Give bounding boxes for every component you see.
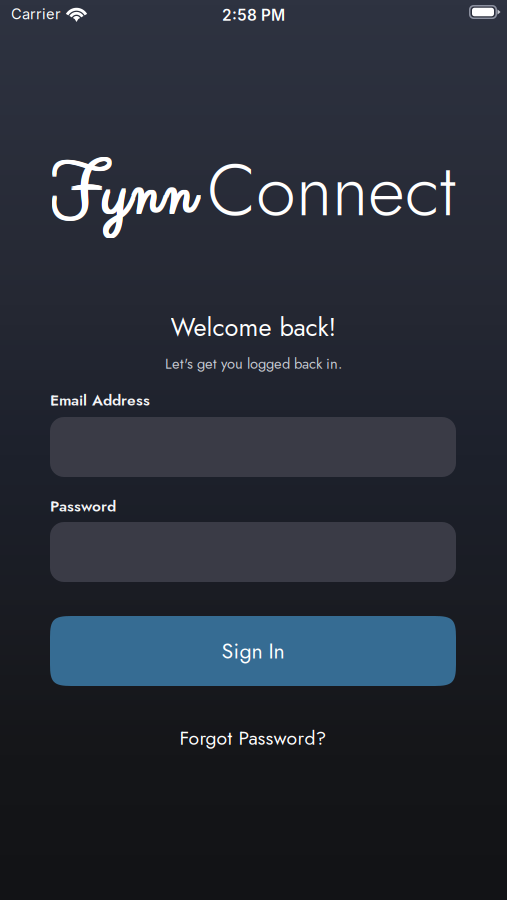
button[interactable]: Sign In — [50, 616, 456, 686]
staticText: 2:58 PM — [222, 6, 285, 25]
staticText: Fynn — [51, 145, 195, 247]
staticText: Email Address — [50, 389, 150, 411]
staticText: Fynn — [51, 142, 195, 244]
staticText: Fynn — [52, 144, 196, 246]
staticText: Carrier — [11, 5, 61, 23]
staticText: Fynn — [50, 144, 194, 246]
staticText: Connect — [207, 138, 456, 242]
staticText: Welcome back! — [170, 309, 336, 346]
button[interactable]: Forgot Password? — [50, 721, 456, 755]
staticText: Fynn — [52, 145, 196, 247]
staticText: Fynn — [50, 145, 194, 247]
staticText: Fynn — [52, 142, 196, 244]
staticText: Fynn — [51, 144, 195, 246]
staticText: Password — [50, 495, 116, 517]
staticText: Fynn — [50, 142, 194, 244]
staticText: Let's get you logged back in. — [165, 353, 342, 374]
staticText: Forgot Password? — [179, 724, 326, 752]
staticText: Sign In — [221, 636, 284, 666]
